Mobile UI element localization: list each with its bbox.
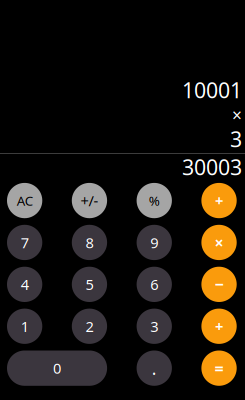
- button[interactable]: 9: [137, 225, 172, 260]
- staticText: AC: [17, 192, 33, 209]
- button[interactable]: 7: [7, 225, 42, 260]
- staticText: +/-: [80, 191, 98, 210]
- staticText: 0: [53, 358, 61, 378]
- staticText: ×: [214, 232, 223, 253]
- staticText: ×: [232, 103, 242, 126]
- staticText: 30003: [182, 153, 242, 181]
- button[interactable]: Plus: [201, 309, 237, 344]
- staticText: 6: [150, 275, 158, 294]
- staticText: 8: [85, 233, 93, 252]
- staticText: +: [215, 316, 223, 336]
- staticText: =: [214, 357, 223, 379]
- staticText: 10001: [182, 76, 242, 104]
- staticText: 5: [85, 275, 93, 294]
- staticText: −: [214, 274, 223, 295]
- button[interactable]: 8: [72, 225, 107, 260]
- button[interactable]: Minus: [201, 267, 237, 302]
- staticText: 1: [21, 316, 29, 336]
- staticText: 7: [21, 233, 29, 252]
- button[interactable]: Equals: [201, 350, 237, 386]
- staticText: 3: [150, 316, 158, 336]
- button[interactable]: Plus: [201, 183, 237, 218]
- button[interactable]: Plus minus: [72, 183, 107, 218]
- staticText: 2: [85, 316, 93, 336]
- button[interactable]: 6: [137, 267, 172, 302]
- button[interactable]: 0: [7, 350, 107, 386]
- staticText: %: [149, 192, 160, 209]
- button[interactable]: Decimal point: [137, 350, 172, 386]
- button[interactable]: Multiply: [201, 225, 237, 260]
- staticText: +: [215, 191, 223, 210]
- staticText: .: [152, 357, 157, 380]
- button[interactable]: 1: [7, 309, 42, 344]
- staticText: 3: [230, 125, 242, 153]
- button[interactable]: All clear: [7, 183, 42, 218]
- staticText: 4: [21, 275, 29, 294]
- button[interactable]: 3: [137, 309, 172, 344]
- staticText: 9: [150, 233, 158, 252]
- button[interactable]: Percent: [137, 183, 172, 218]
- button[interactable]: 2: [72, 309, 107, 344]
- button[interactable]: 5: [72, 267, 107, 302]
- button[interactable]: 4: [7, 267, 42, 302]
